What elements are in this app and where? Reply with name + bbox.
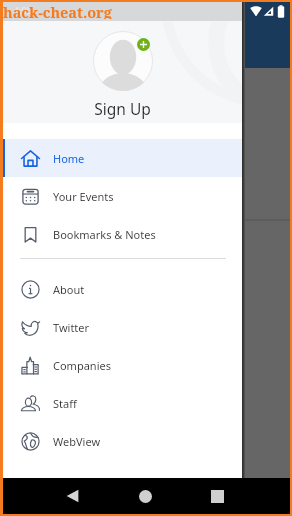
staticText: Twitter: [53, 320, 90, 335]
button[interactable]: Bookmarks & Notes: [3, 215, 242, 253]
staticText: Your Events: [53, 189, 114, 204]
button[interactable]: Sign up: [137, 38, 150, 51]
button[interactable]: About: [3, 270, 242, 308]
button[interactable]: Home: [127, 478, 163, 514]
staticText: Staff: [53, 396, 77, 411]
button[interactable]: Twitter: [3, 308, 242, 346]
button[interactable]: Staff: [3, 384, 242, 422]
button[interactable]: Your Events: [3, 177, 242, 215]
staticText: Bookmarks & Notes: [53, 227, 156, 242]
staticText: About: [53, 282, 85, 297]
staticText: hack-cheat.org: [3, 2, 112, 19]
staticText: Companies: [53, 358, 111, 373]
button[interactable]: WebView: [3, 422, 242, 460]
staticText: WebView: [53, 434, 101, 449]
button[interactable]: Recent apps: [199, 478, 235, 514]
staticText: Home: [53, 151, 85, 166]
button[interactable]: Back: [54, 478, 90, 514]
button[interactable]: Sign up: [3, 21, 242, 123]
staticText: 4:05: [14, 4, 32, 16]
button[interactable]: Home: [3, 139, 242, 177]
button[interactable]: Companies: [3, 346, 242, 384]
staticText: Sign Up: [94, 98, 151, 119]
